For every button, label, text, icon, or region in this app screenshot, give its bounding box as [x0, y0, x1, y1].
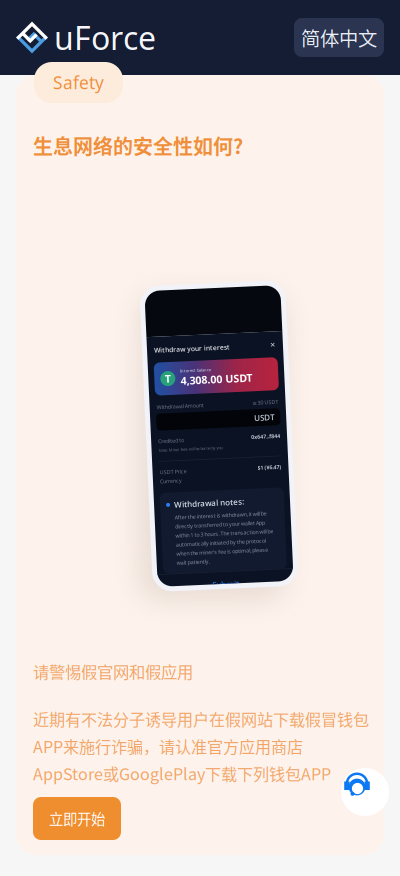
- button[interactable]: uForce: [17, 10, 156, 65]
- staticText: directly transferred to your wallet App: [171, 521, 261, 528]
- staticText: Credited to: [158, 435, 184, 442]
- staticText: ≥ 30 USDT: [254, 401, 280, 408]
- staticText: Currency: [158, 475, 180, 482]
- staticText: T: [167, 369, 173, 383]
- staticText: Withdrawal Amount: [158, 401, 205, 408]
- staticText: Withdrawal notes:: [171, 497, 241, 508]
- staticText: Note: Miner fees will be borne by you: [158, 445, 222, 450]
- staticText: Safety: [53, 71, 104, 94]
- staticText: 简体中文: [301, 23, 377, 51]
- staticText: USDT: [255, 414, 275, 425]
- staticText: After the interest is withdrawn, it will…: [171, 512, 263, 519]
- staticText: 近期有不法分子诱导用户在假网站下载假冒钱包: [33, 707, 369, 730]
- staticText: wait patiently.: [171, 557, 204, 564]
- staticText: Interest balance: [183, 367, 214, 372]
- staticText: 生息网络的安全性如何?: [33, 131, 243, 160]
- staticText: 0x647...f844: [251, 435, 280, 442]
- staticText: automatically initiated by the protocol: [171, 539, 261, 546]
- staticText: Submit: [205, 579, 232, 590]
- button[interactable]: Customer support: [341, 768, 389, 816]
- button[interactable]: 立即开始: [33, 797, 121, 840]
- staticText: 4,308.00 USDT: [183, 372, 255, 386]
- staticText: uForce: [54, 16, 156, 59]
- staticText: 请警惕假官网和假应用: [33, 659, 193, 683]
- staticText: Withdraw your interest: [158, 343, 234, 352]
- staticText: 立即开始: [49, 808, 105, 829]
- staticText: USDT Price: [158, 466, 185, 473]
- staticText: within 1 to 3 hours. The transaction wil…: [171, 530, 269, 537]
- button[interactable]: 简体中文: [294, 18, 384, 57]
- staticText: when the miner's fee is optimal, please: [171, 548, 263, 555]
- staticText: $1 (¥6.47): [256, 466, 280, 473]
- staticText: ✕: [274, 344, 280, 351]
- staticText: APP来施行诈骗，请认准官方应用商店: [33, 734, 303, 758]
- staticText: AppStore或GooglePlay下载下列钱包APP: [33, 762, 331, 785]
